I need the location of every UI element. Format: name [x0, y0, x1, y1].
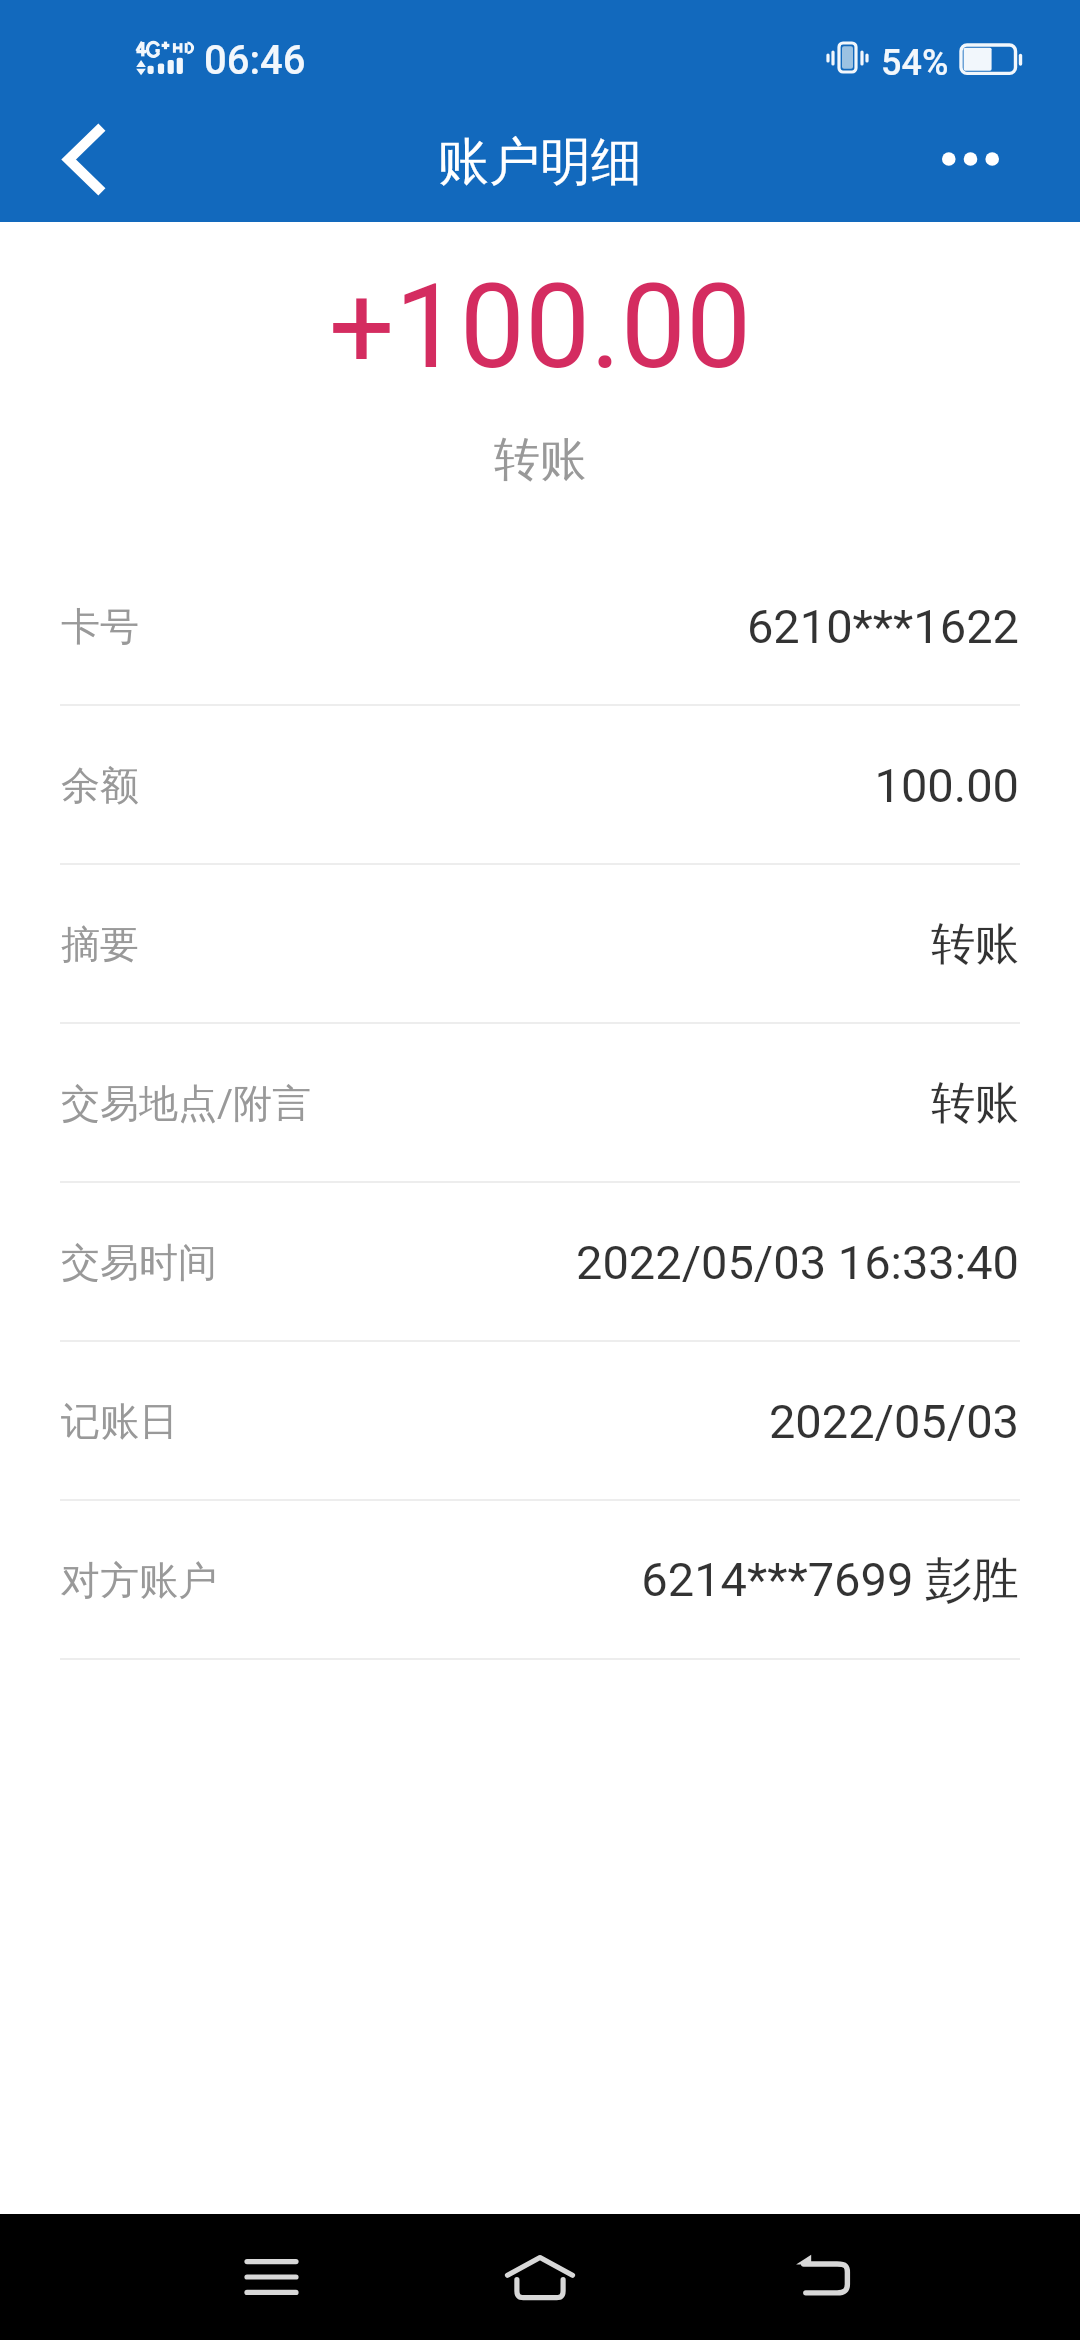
- staticText: 2022/05/03: [768, 1394, 1019, 1449]
- staticText: 交易地点/附言: [61, 1079, 312, 1128]
- staticText: 摘要: [61, 920, 139, 969]
- staticText: 余额: [61, 761, 139, 810]
- staticText: 转账: [0, 431, 1080, 489]
- button[interactable]: 交易时间: [0, 1183, 1080, 1342]
- staticText: 54%: [881, 42, 949, 84]
- button[interactable]: 记账日: [0, 1342, 1080, 1501]
- button[interactable]: Home: [480, 2214, 600, 2340]
- button[interactable]: 交易地点/附言: [0, 1024, 1080, 1183]
- button[interactable]: Back: [20, 96, 150, 222]
- staticText: 记账日: [61, 1397, 178, 1446]
- staticText: 卡号: [61, 602, 139, 651]
- staticText: 06:46: [204, 37, 306, 84]
- staticText: 账户明细: [438, 130, 642, 194]
- staticText: 6214***7699 彭胜: [641, 1551, 1019, 1610]
- button[interactable]: 对方账户: [0, 1501, 1080, 1660]
- staticText: 100.00: [874, 758, 1019, 813]
- staticText: 转账: [931, 1076, 1019, 1131]
- staticText: 6210***1622: [746, 599, 1019, 654]
- button[interactable]: 摘要: [0, 865, 1080, 1024]
- button[interactable]: Back: [767, 2214, 877, 2340]
- button[interactable]: 余额: [0, 706, 1080, 865]
- staticText: 转账: [931, 917, 1019, 972]
- button[interactable]: 卡号: [0, 547, 1080, 706]
- staticText: 对方账户: [61, 1556, 217, 1605]
- button[interactable]: Recent apps: [220, 2214, 322, 2340]
- staticText: +100.00: [0, 259, 1080, 395]
- button[interactable]: More options: [907, 96, 1033, 222]
- staticText: 2022/05/03 16:33:40: [575, 1235, 1019, 1290]
- staticText: 交易时间: [61, 1238, 217, 1287]
